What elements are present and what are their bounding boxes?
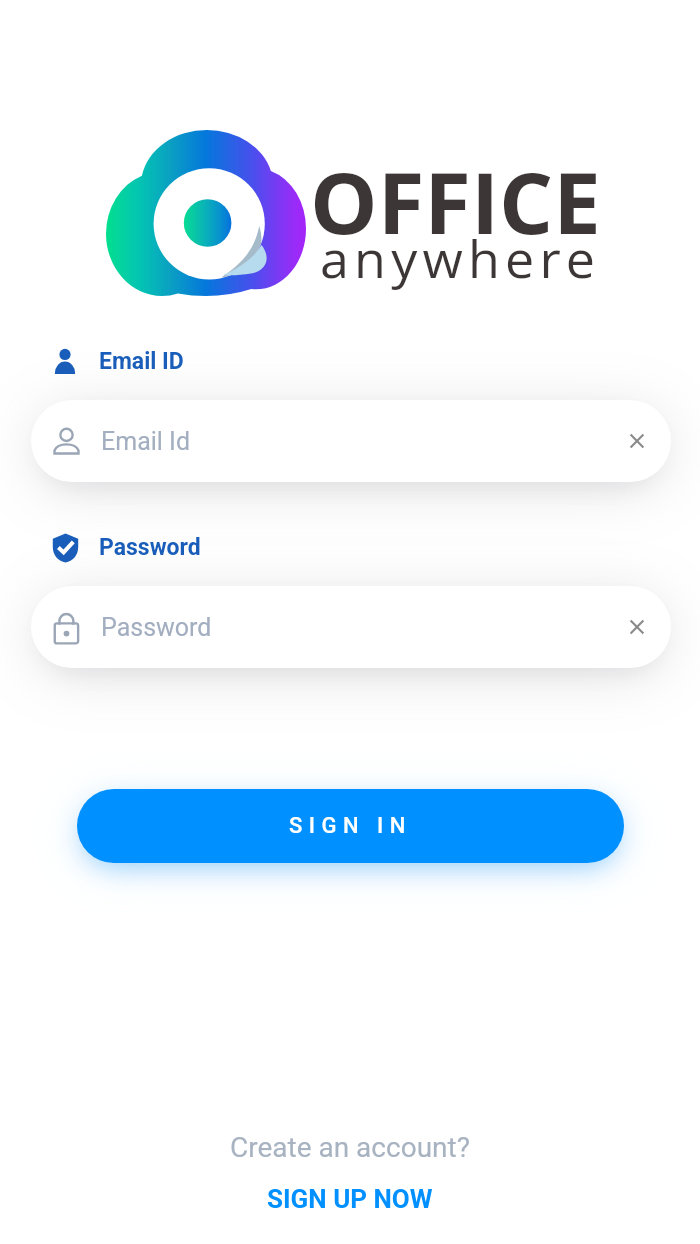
staticText: Email ID bbox=[99, 348, 184, 375]
button[interactable]: Email Id bbox=[31, 400, 671, 482]
staticText: OFFICE bbox=[310, 143, 601, 259]
staticText: SIGN UP NOW bbox=[267, 1184, 433, 1214]
button[interactable]: Password bbox=[31, 586, 671, 668]
staticText: Create an account? bbox=[230, 1131, 470, 1164]
button[interactable]: SIGN UP NOW bbox=[267, 1184, 433, 1214]
button[interactable]: Password bbox=[50, 532, 201, 563]
staticText: Password bbox=[99, 534, 201, 561]
other: Clear bbox=[618, 608, 656, 646]
button[interactable]: Email ID bbox=[51, 347, 184, 375]
staticText: SIGN IN bbox=[289, 813, 412, 839]
staticText: Email Id bbox=[101, 427, 190, 456]
staticText: Password bbox=[101, 613, 212, 642]
button[interactable]: SIGN IN bbox=[77, 789, 624, 863]
other: Clear bbox=[618, 422, 656, 460]
staticText: anywhere bbox=[320, 222, 601, 293]
